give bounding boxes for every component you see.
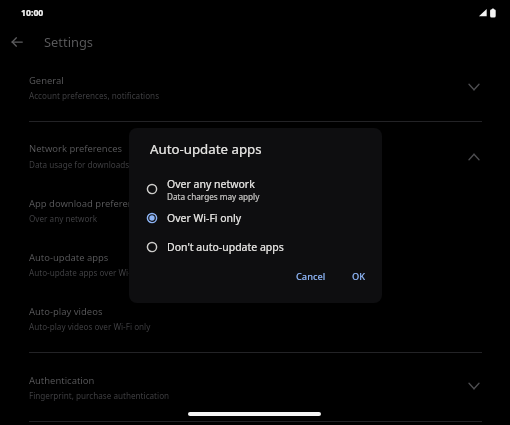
staticText: Auto-play videos over Wi-Fi only bbox=[29, 321, 151, 332]
staticText: App download preference bbox=[29, 197, 144, 210]
staticText: General bbox=[29, 74, 64, 87]
staticText: 10:00 bbox=[21, 7, 44, 19]
button[interactable]: Auto-update apps bbox=[0, 246, 510, 286]
staticText: Account preferences, notifications bbox=[29, 90, 160, 101]
staticText: Auto-update apps over Wi-Fi bbox=[29, 267, 138, 278]
staticText: Data charges may apply bbox=[167, 191, 260, 202]
button[interactable]: Auto-play videos bbox=[0, 300, 510, 340]
staticText: Auto-play videos bbox=[29, 305, 103, 318]
staticText: Fingerprint, purchase authentication bbox=[29, 390, 170, 401]
button[interactable]: Don't auto-update apps bbox=[129, 235, 382, 259]
staticText: Don't auto-update apps bbox=[167, 240, 284, 254]
button[interactable]: Over any network bbox=[129, 179, 382, 209]
staticText: Network preferences bbox=[29, 142, 123, 155]
button[interactable]: Expand General bbox=[461, 74, 487, 100]
staticText: Over any network bbox=[167, 177, 255, 191]
staticText: Cancel bbox=[296, 270, 326, 283]
staticText: Settings bbox=[44, 33, 94, 51]
staticText: Over any network bbox=[29, 213, 98, 224]
button[interactable]: App download preference bbox=[0, 192, 510, 232]
button[interactable]: OK bbox=[347, 266, 371, 286]
staticText: OK bbox=[352, 270, 366, 283]
staticText: Authentication bbox=[29, 374, 95, 387]
button[interactable]: Back bbox=[5, 30, 29, 54]
button[interactable]: General bbox=[0, 69, 510, 109]
staticText: Auto-update apps bbox=[29, 251, 109, 264]
button[interactable]: Collapse Network preferences bbox=[461, 144, 487, 170]
staticText: Over Wi-Fi only bbox=[167, 211, 242, 225]
button[interactable]: Expand Authentication bbox=[461, 373, 487, 399]
button[interactable]: Cancel bbox=[291, 266, 330, 286]
staticText: Auto-update apps bbox=[150, 140, 262, 158]
button[interactable]: Network preferences bbox=[0, 137, 510, 177]
button[interactable]: Over Wi-Fi only bbox=[129, 206, 382, 230]
button[interactable]: Authentication bbox=[0, 369, 510, 409]
staticText: Data usage for downloads bbox=[29, 159, 130, 170]
